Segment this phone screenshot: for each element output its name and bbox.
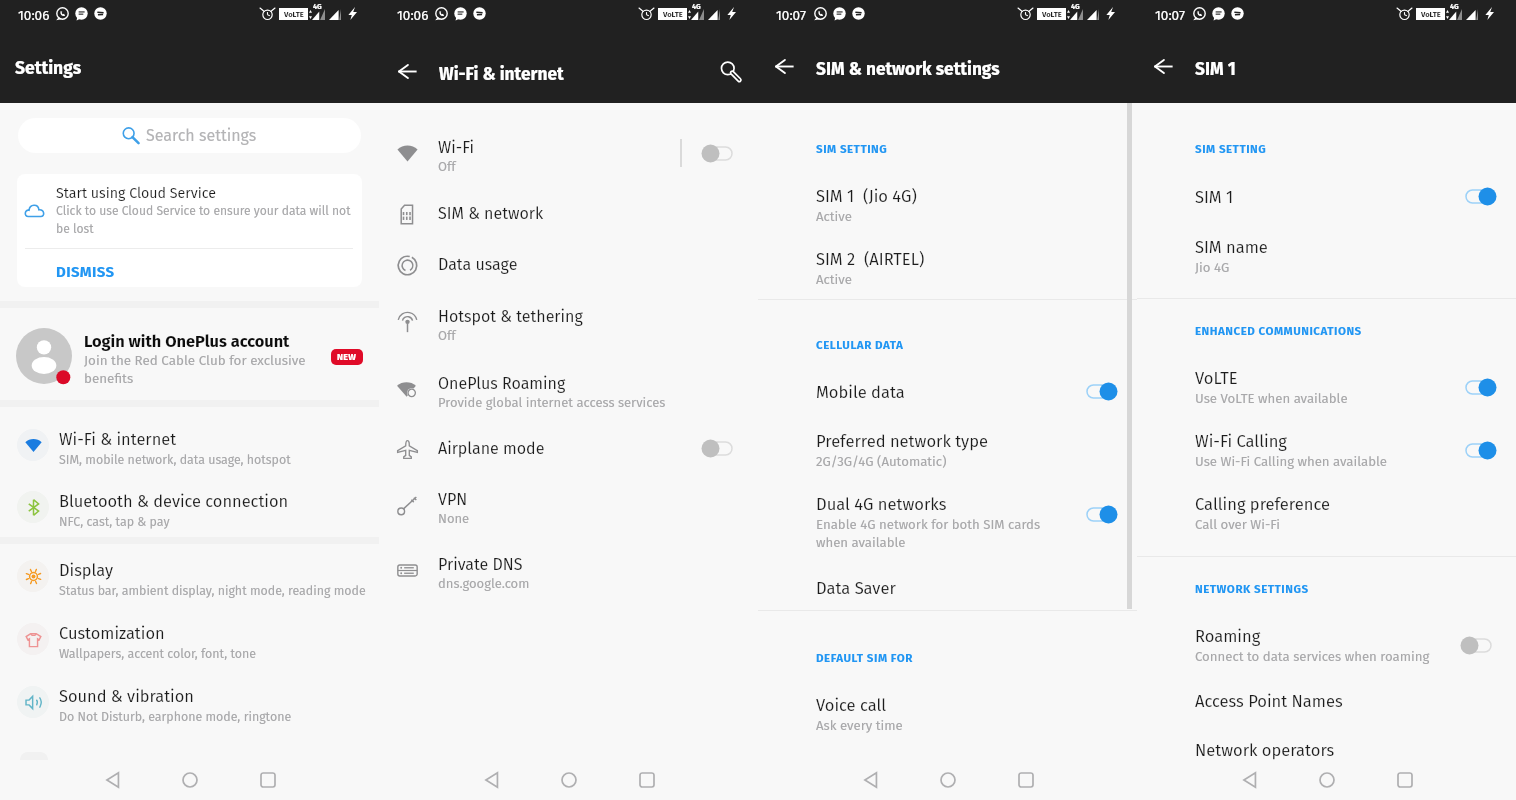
button[interactable]: Home	[927, 759, 968, 800]
staticText: Wi-Fi	[438, 138, 474, 157]
button[interactable]: Data usage	[379, 250, 758, 284]
button[interactable]: SIM 1 (Jio 4G)	[758, 187, 1137, 239]
button[interactable]: Access Point Names	[1137, 692, 1516, 722]
button[interactable]: Back	[1143, 46, 1183, 86]
staticText: NEW	[337, 352, 357, 363]
button[interactable]: Hotspot & tethering	[379, 302, 758, 354]
staticText: Airplane mode	[438, 439, 545, 458]
button[interactable]: Wi-Fi	[379, 133, 758, 185]
button[interactable]: Switch on	[1078, 496, 1126, 532]
staticText: SIM, mobile network, data usage, hotspot	[59, 452, 291, 467]
button[interactable]: Search settings	[18, 118, 361, 153]
button[interactable]: Switch off	[698, 135, 746, 171]
button[interactable]: Search	[710, 51, 750, 91]
staticText: 4G	[692, 2, 701, 11]
button[interactable]: Recents	[247, 759, 288, 800]
button[interactable]: Private DNS	[379, 550, 758, 602]
staticText: SIM 1	[1195, 188, 1234, 208]
staticText: Access Point Names	[1195, 692, 1343, 712]
staticText: Settings	[15, 58, 82, 79]
button[interactable]: Back	[1229, 759, 1270, 800]
button[interactable]: Customization	[0, 608, 379, 670]
staticText: SIM 2 (AIRTEL)	[816, 250, 925, 270]
staticText: Calling preference	[1195, 495, 1330, 515]
button[interactable]: Preferred network type	[758, 432, 1137, 484]
button[interactable]: Calling preference	[1137, 495, 1516, 547]
button[interactable]: Back	[471, 759, 512, 800]
staticText: Preferred network type	[816, 432, 989, 452]
button[interactable]: Airplane mode	[379, 434, 758, 468]
staticText: SIM & network settings	[816, 59, 1000, 80]
staticText: 4G	[313, 2, 322, 11]
staticText: Use VoLTE when available	[1195, 391, 1348, 407]
button[interactable]: Home	[169, 759, 210, 800]
staticText: dns.google.com	[438, 576, 530, 592]
button[interactable]: Home	[548, 759, 589, 800]
staticText: Use Wi-Fi Calling when available	[1195, 454, 1388, 470]
staticText: Wi-Fi & internet	[59, 430, 177, 450]
button[interactable]: Switch on	[1078, 373, 1126, 409]
staticText: OnePlus Roaming	[438, 374, 566, 393]
button[interactable]: NEW	[331, 349, 363, 365]
button[interactable]: Back	[92, 759, 133, 800]
staticText: 10:06	[18, 7, 50, 23]
staticText: VoLTE	[1421, 10, 1441, 19]
staticText: Dual 4G networks	[816, 495, 947, 515]
staticText: 10:07	[1155, 7, 1185, 23]
staticText: Enable 4G network for both SIM cards whe…	[816, 517, 1068, 551]
staticText: 10:06	[397, 7, 429, 23]
staticText: 2G/3G/4G (Automatic)	[816, 454, 947, 470]
button[interactable]: Wi-Fi & internet	[0, 414, 379, 476]
button[interactable]: VoLTE	[1137, 369, 1516, 421]
button[interactable]: Switch on	[1457, 369, 1505, 405]
staticText: VoLTE	[284, 10, 304, 19]
staticText: Jio 4G	[1195, 260, 1230, 276]
staticText: Start using Cloud Service	[56, 185, 216, 202]
button[interactable]: Mobile data	[758, 383, 1137, 413]
button[interactable]: SIM 1	[1137, 188, 1516, 218]
staticText: SIM SETTING	[816, 142, 888, 156]
button[interactable]: Sound & vibration	[0, 671, 379, 733]
button[interactable]: DISMISS	[17, 249, 362, 287]
staticText: 4G	[1450, 2, 1459, 11]
staticText: SIM name	[1195, 238, 1268, 258]
button[interactable]: Back	[764, 46, 804, 86]
staticText: None	[438, 511, 470, 527]
button[interactable]: Recents	[626, 759, 667, 800]
button[interactable]: Network operators	[1137, 741, 1516, 771]
button[interactable]: Switch on	[1457, 432, 1505, 468]
button[interactable]: Display	[0, 545, 379, 607]
staticText: Network operators	[1195, 741, 1335, 761]
button[interactable]: SIM name	[1137, 238, 1516, 290]
staticText: Active	[816, 209, 852, 225]
staticText: NETWORK SETTINGS	[1195, 582, 1309, 596]
button[interactable]: Switch off	[698, 430, 746, 466]
button[interactable]: Bluetooth & device connection	[0, 476, 379, 538]
staticText: Call over Wi-Fi	[1195, 517, 1281, 533]
staticText: Private DNS	[438, 555, 523, 574]
button[interactable]: Data Saver	[758, 579, 1137, 609]
button[interactable]: Wi-Fi Calling	[1137, 432, 1516, 484]
staticText: ENHANCED COMMUNICATIONS	[1195, 324, 1362, 338]
button[interactable]: Back	[850, 759, 891, 800]
button[interactable]: Switch on	[1457, 178, 1505, 214]
button[interactable]: Login with OnePlus account	[0, 308, 379, 400]
staticText: VoLTE	[663, 10, 683, 19]
button[interactable]: Switch off	[1457, 627, 1505, 663]
staticText: DEFAULT SIM FOR	[816, 651, 913, 665]
button[interactable]: OnePlus Roaming	[379, 369, 758, 421]
button[interactable]: SIM & network	[379, 199, 758, 233]
button[interactable]: Back	[387, 51, 427, 91]
button[interactable]: VPN	[379, 485, 758, 537]
button[interactable]: Dual 4G networks	[758, 495, 1137, 547]
button[interactable]: Roaming	[1137, 627, 1516, 679]
button[interactable]: Recents	[1384, 759, 1425, 800]
button[interactable]: Recents	[1005, 759, 1046, 800]
button[interactable]: Home	[1306, 759, 1347, 800]
button[interactable]: SIM 2 (AIRTEL)	[758, 250, 1137, 302]
staticText: SIM SETTING	[1195, 142, 1267, 156]
staticText: NFC, cast, tap & pay	[59, 514, 170, 529]
staticText: Roaming	[1195, 627, 1261, 647]
staticText: Ask every time	[816, 718, 903, 734]
button[interactable]: Voice call	[758, 696, 1137, 748]
